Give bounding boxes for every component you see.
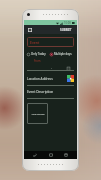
staticText: Only Today	[31, 52, 46, 56]
button[interactable]: Recent apps	[62, 151, 70, 159]
button[interactable]: Location Address	[27, 75, 74, 85]
button[interactable]: SUBMIT	[58, 27, 74, 33]
staticText: ADD IMAGE	[31, 112, 45, 115]
staticText: Location Address	[27, 77, 53, 81]
button[interactable]: ADD IMAGE	[27, 103, 48, 124]
staticText: 10:08	[64, 21, 71, 25]
button[interactable]: Pick date	[67, 67, 70, 70]
button[interactable]: Open navigation menu	[27, 27, 32, 32]
staticText: -	[51, 66, 53, 70]
button[interactable]: Back	[31, 151, 39, 159]
button[interactable]: Home	[47, 151, 55, 159]
staticText: SUBMIT	[60, 28, 72, 32]
staticText: Multiple days	[54, 52, 72, 56]
staticText: Event	[30, 40, 40, 45]
button[interactable]: Multiple days	[50, 51, 74, 57]
button[interactable]: Only Today	[27, 51, 50, 57]
button[interactable]: Event	[27, 37, 74, 47]
button[interactable]: Open map to pick location	[67, 75, 74, 82]
staticText: Event Description	[27, 90, 54, 94]
staticText: From	[34, 59, 41, 63]
